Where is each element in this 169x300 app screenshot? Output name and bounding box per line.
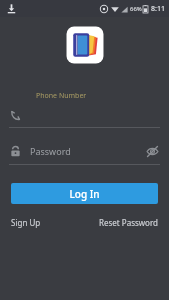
button[interactable]: Sign Up: [9, 214, 43, 231]
staticText: Log In: [69, 187, 100, 201]
button[interactable]: Show password: [141, 140, 163, 162]
button[interactable]: Password: [30, 145, 141, 157]
staticText: 8:11: [151, 4, 165, 14]
staticText: 66%: [130, 5, 142, 13]
button[interactable]: [0, 105, 169, 125]
button[interactable]: Log In: [11, 183, 158, 204]
button[interactable]: Reset Password: [97, 214, 160, 231]
staticText: Phone Number: [36, 91, 87, 101]
staticText: Sign Up: [11, 217, 41, 228]
staticText: Password: [30, 145, 71, 157]
staticText: Reset Password: [99, 217, 158, 228]
